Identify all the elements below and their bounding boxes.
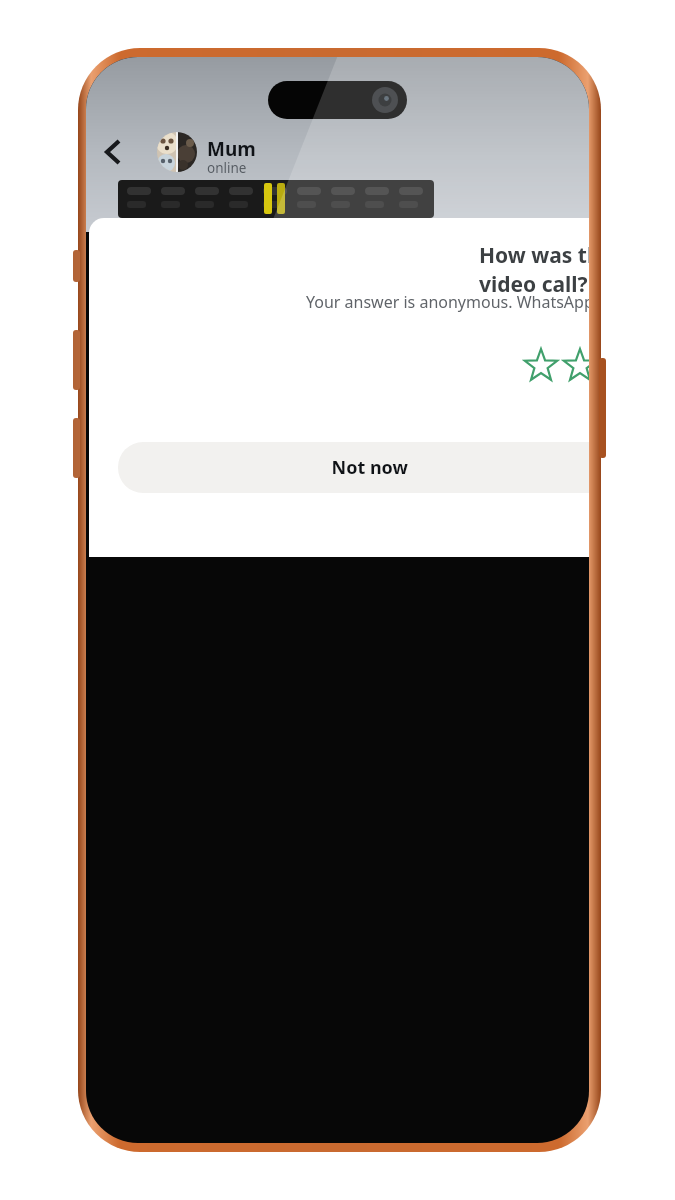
button[interactable] <box>118 442 589 493</box>
button[interactable]: Rate one star <box>523 348 560 385</box>
button[interactable]: Rate two stars <box>562 348 599 385</box>
button[interactable] <box>146 127 346 182</box>
button[interactable]: Back <box>95 131 139 175</box>
